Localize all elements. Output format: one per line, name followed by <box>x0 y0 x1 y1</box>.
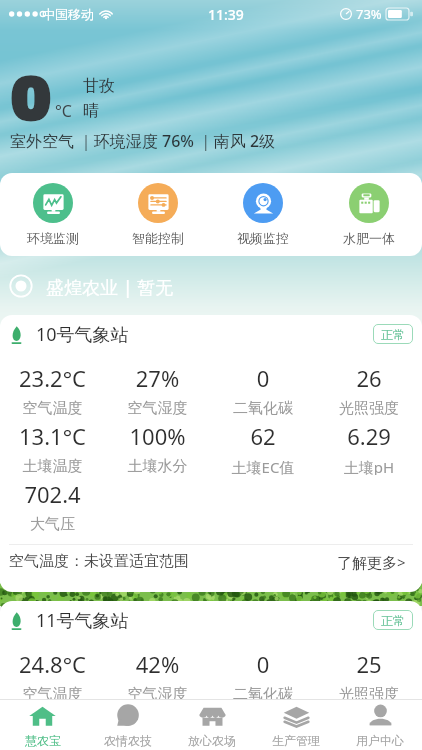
staticText: 73% <box>356 5 382 23</box>
staticText: 晴 <box>83 101 99 121</box>
staticText: 视频监控 <box>237 230 289 246</box>
staticText: °C <box>55 100 72 122</box>
staticText: 正常 <box>381 613 405 628</box>
staticText: 光照强度 <box>316 685 422 703</box>
staticText: 0 <box>10 68 50 132</box>
button[interactable]: 环境监测 <box>0 173 105 256</box>
button[interactable]: 慧农宝 <box>0 700 85 750</box>
button[interactable]: 放心农场 <box>170 700 254 750</box>
staticText: 室外空气 ｜环境湿度 76% ｜南风 2级 <box>10 130 276 152</box>
staticText: 11:39 <box>208 5 244 24</box>
staticText: 13.1°C <box>0 421 105 445</box>
staticText: 0 <box>210 649 316 673</box>
staticText: 水肥一体 <box>343 230 395 246</box>
staticText: 土壤水分 <box>105 457 210 475</box>
staticText: 空气湿度 <box>105 685 210 703</box>
staticText: 二氧化碳 <box>210 685 316 703</box>
staticText: 42% <box>105 649 210 673</box>
staticText: 甘孜 <box>83 76 115 96</box>
staticText: 土壤pH <box>316 457 422 475</box>
staticText: 27% <box>105 363 210 387</box>
button[interactable]: 盛煌农业 | 暂无 <box>9 272 422 300</box>
staticText: 62 <box>210 421 316 445</box>
staticText: 25 <box>316 649 422 673</box>
staticText: 702.4 <box>0 479 105 503</box>
staticText: 空气温度 <box>0 399 105 417</box>
button[interactable]: 视频监控 <box>210 173 316 256</box>
button[interactable]: 农情农技 <box>85 700 170 750</box>
staticText: 放心农场 <box>188 733 236 748</box>
staticText: 空气湿度 <box>105 399 210 417</box>
staticText: 10号气象站 <box>36 322 129 347</box>
staticText: 智能控制 <box>132 230 184 246</box>
staticText: 空气温度：未设置适宜范围 <box>9 552 189 571</box>
button[interactable]: 空气温度：未设置适宜范围 <box>9 545 406 592</box>
staticText: 100% <box>105 421 210 445</box>
staticText: 中国移动 <box>42 6 94 22</box>
staticText: 农情农技 <box>104 733 152 748</box>
staticText: 正常 <box>381 327 405 342</box>
staticText: 生产管理 <box>272 733 320 748</box>
staticText: 大气压 <box>0 515 105 533</box>
staticText: 0 <box>210 363 316 387</box>
staticText: 土壤EC值 <box>210 457 316 475</box>
button[interactable]: 生产管理 <box>254 700 338 750</box>
staticText: 慧农宝 <box>25 733 61 748</box>
staticText: 二氧化碳 <box>210 399 316 417</box>
button[interactable]: 用户中心 <box>338 700 422 750</box>
staticText: 11号气象站 <box>36 608 129 633</box>
staticText: 用户中心 <box>356 733 404 748</box>
staticText: 23.2°C <box>0 363 105 387</box>
staticText: 盛煌农业 | 暂无 <box>46 275 174 300</box>
staticText: 24.8°C <box>0 649 105 673</box>
staticText: 空气温度 <box>0 685 105 703</box>
button[interactable]: 智能控制 <box>105 173 210 256</box>
staticText: 6.29 <box>316 421 422 445</box>
staticText: 了解更多> <box>337 552 406 572</box>
staticText: 光照强度 <box>316 399 422 417</box>
staticText: 土壤温度 <box>0 457 105 475</box>
staticText: 26 <box>316 363 422 387</box>
staticText: 环境监测 <box>27 230 79 246</box>
button[interactable]: 水肥一体 <box>316 173 422 256</box>
